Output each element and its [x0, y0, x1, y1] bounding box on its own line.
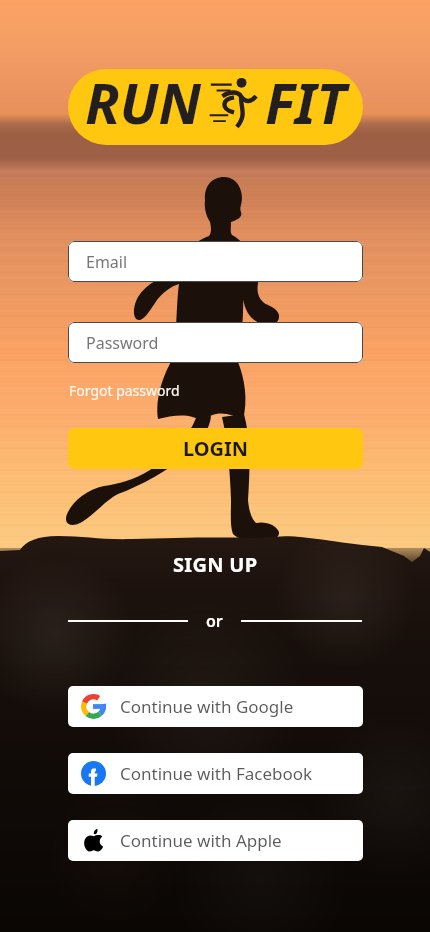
button[interactable]: Continue with Apple	[68, 820, 363, 861]
button[interactable]: Continue with Facebook	[68, 753, 363, 794]
button[interactable]: Email	[68, 241, 363, 282]
staticText: Password	[86, 332, 159, 354]
staticText: Email	[86, 251, 128, 273]
button[interactable]: Continue with Google	[68, 686, 363, 727]
staticText: or	[206, 610, 223, 632]
staticText: FIT	[265, 69, 347, 140]
staticText: RUN	[85, 69, 201, 140]
staticText: Continue with Google	[120, 695, 294, 718]
staticText: LOGIN	[183, 435, 249, 462]
button[interactable]: SIGN UP	[173, 551, 258, 578]
staticText: Continue with Apple	[120, 829, 282, 852]
button[interactable]: Password	[68, 322, 363, 363]
staticText: Continue with Facebook	[120, 762, 313, 785]
button[interactable]: Forgot password	[69, 381, 180, 400]
button[interactable]: RUN	[68, 69, 363, 145]
button[interactable]: LOGIN	[68, 428, 363, 469]
